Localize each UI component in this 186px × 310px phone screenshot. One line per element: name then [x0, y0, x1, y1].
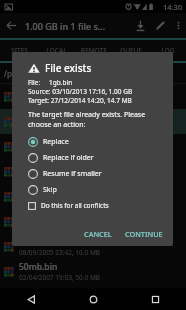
button[interactable]: Recents	[124, 288, 186, 310]
staticText: 02/04/2007 19:03, 50.0 MB	[19, 273, 101, 282]
button[interactable]: 20mb.bin	[0, 234, 186, 259]
button[interactable]: 200mb.bin	[0, 109, 186, 134]
staticText: 14/08/2012 06:55, 5.00 GB	[19, 173, 99, 182]
staticText: Replace	[43, 137, 69, 147]
staticText: CANCEL	[84, 229, 112, 239]
staticText: LOCAL	[46, 46, 67, 55]
button[interactable]: Do this for all conflicts	[28, 199, 109, 212]
staticText: REMOTE	[81, 46, 107, 55]
button[interactable]: Home	[62, 288, 124, 310]
button[interactable]: CONTINUE	[122, 227, 166, 241]
staticText: 12/11/2009 08:31, 200 MB	[19, 123, 99, 132]
button[interactable]: 5gb.bin	[0, 159, 186, 184]
button[interactable]: CANCEL	[81, 227, 115, 241]
staticText: File:	[28, 78, 41, 87]
staticText: Skip	[43, 185, 57, 195]
button[interactable]: 100mb.bin	[0, 184, 186, 209]
staticText: The target file already exists. Please c…	[28, 110, 165, 130]
staticText: CONTINUE	[125, 229, 163, 239]
staticText: 2gb.bin	[19, 136, 50, 148]
button[interactable]: Replace if older	[28, 150, 94, 166]
staticText: Do this for all conflicts	[41, 201, 109, 210]
button[interactable]: LOCAL	[38, 40, 75, 61]
button[interactable]: Edit	[150, 13, 170, 38]
button[interactable]: Resume if smaller	[28, 166, 102, 182]
button[interactable]: More options	[170, 13, 186, 38]
staticText: 50mb.bin	[19, 261, 58, 273]
staticText: 5gb.bin	[19, 161, 50, 173]
button[interactable]: REMOTE	[75, 40, 112, 61]
button[interactable]: Back	[0, 288, 62, 310]
button[interactable]: QUEUE	[112, 40, 149, 61]
staticText: 14:30	[163, 2, 183, 12]
staticText: File exists	[45, 61, 92, 75]
button[interactable]: SITES	[0, 40, 38, 61]
staticText: Replace if older	[43, 153, 94, 163]
staticText: 08/09/2005 23:42, 10.0 MB	[19, 248, 101, 257]
staticText: 03/10/2013 17:16, 1.00 GB	[19, 98, 99, 107]
button[interactable]: 10mb.bin	[0, 209, 186, 234]
staticText: LOG	[161, 46, 175, 55]
staticText: 30/01/2008 12:12, 100 MB	[19, 198, 99, 207]
button[interactable]: 50mb.bin	[0, 259, 186, 284]
button[interactable]: 2gb.bin	[0, 134, 186, 159]
button[interactable]: Back	[0, 13, 22, 38]
staticText: Resume if smaller	[43, 169, 102, 179]
staticText: Source: 03/10/2013 17:16, 1.00 GB	[28, 87, 133, 96]
staticText: 21/05/2011 11:07, 2.00 GB	[19, 148, 99, 157]
button[interactable]: 1gb.bin	[0, 84, 186, 109]
staticText: /pub/example	[4, 68, 57, 79]
staticText: 1gb.bin	[49, 78, 73, 87]
staticText: 100mb.bin	[19, 186, 63, 198]
staticText: Target: 27/12/2014 14:20, 14.7 MB	[28, 96, 132, 105]
staticText: 1.00 GB in 1 file s…	[25, 20, 130, 32]
button[interactable]: Replace	[28, 134, 69, 150]
staticText: 1gb.bin	[19, 86, 50, 98]
staticText: 20mb.bin	[19, 236, 58, 248]
staticText: QUEUE	[120, 46, 142, 55]
button[interactable]: Skip	[28, 182, 57, 198]
staticText: 200mb.bin	[19, 111, 63, 123]
button[interactable]: LOG	[149, 40, 186, 61]
staticText: SITES	[11, 46, 28, 55]
button[interactable]: Download	[130, 13, 150, 38]
